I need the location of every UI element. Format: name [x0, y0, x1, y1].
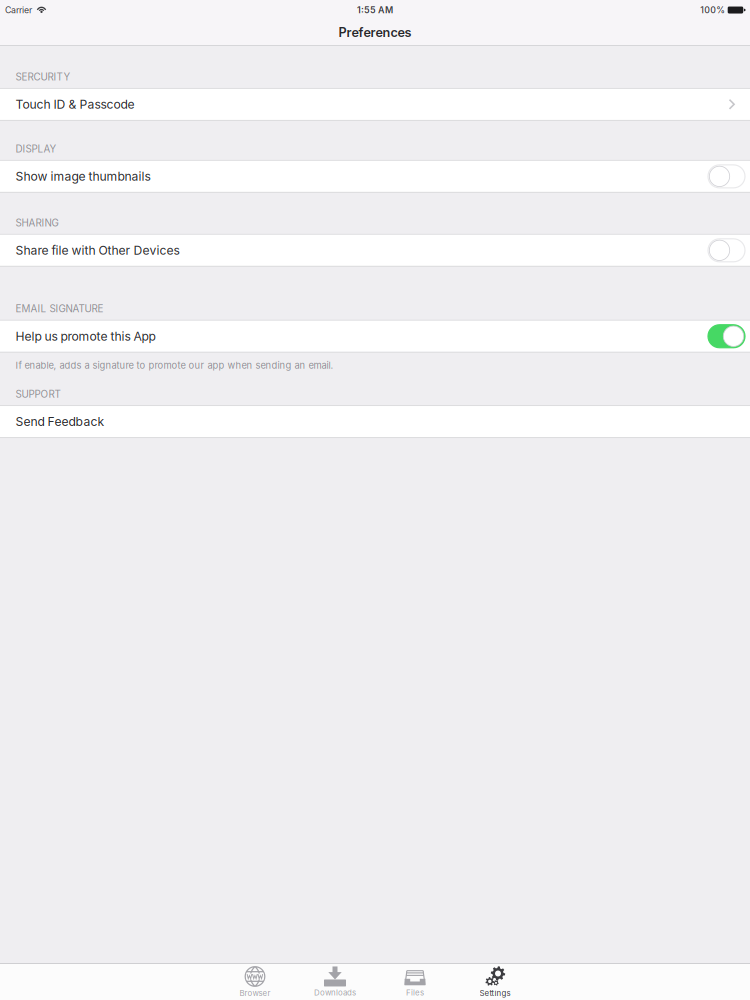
staticText: Downloads	[314, 988, 356, 997]
staticText: Send Feedback	[15, 414, 104, 429]
staticText: 100%	[700, 5, 725, 15]
staticText: Settings	[479, 988, 510, 998]
button[interactable]: Send Feedback	[0, 406, 750, 437]
button[interactable]: Browser	[215, 965, 295, 999]
staticText: Carrier	[5, 5, 32, 15]
staticText: Help us promote this App	[15, 329, 155, 344]
staticText: Files	[406, 988, 424, 997]
staticText: SERCURITY	[15, 71, 70, 83]
button[interactable]: Share file with Other Devices	[0, 235, 750, 266]
staticText: Preferences	[338, 25, 411, 40]
staticText: If enable, adds a signature to promote o…	[15, 360, 333, 371]
staticText: Share file with Other Devices	[15, 243, 179, 258]
staticText: Touch ID & Passcode	[15, 97, 134, 112]
staticText: 1:55 AM	[357, 5, 393, 15]
button[interactable]: Touch ID & Passcode	[0, 89, 750, 120]
staticText: DISPLAY	[15, 143, 56, 155]
staticText: EMAIL SIGNATURE	[15, 303, 103, 315]
button[interactable]: Settings	[455, 965, 535, 999]
button[interactable]: Downloads	[295, 965, 375, 999]
staticText: Browser	[239, 988, 270, 998]
button[interactable]: Files	[375, 965, 455, 999]
button[interactable]: Help us promote this App	[0, 321, 750, 352]
staticText: SHARING	[15, 217, 58, 229]
staticText: SUPPORT	[15, 388, 60, 400]
button[interactable]: Show image thumbnails	[0, 161, 750, 192]
staticText: Show image thumbnails	[15, 169, 150, 184]
